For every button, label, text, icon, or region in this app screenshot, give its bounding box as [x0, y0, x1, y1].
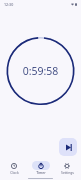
button[interactable]: Start timer	[59, 138, 77, 156]
staticText: 12:30	[4, 2, 14, 7]
button[interactable]: Clock	[1, 160, 27, 176]
staticText: Timer	[36, 170, 46, 175]
staticText: 0:59:58	[0, 64, 81, 78]
button[interactable]: Settings	[54, 160, 80, 176]
staticText: Settings	[61, 170, 74, 175]
button[interactable]: Timer	[28, 160, 54, 176]
staticText: Clock	[10, 170, 19, 175]
